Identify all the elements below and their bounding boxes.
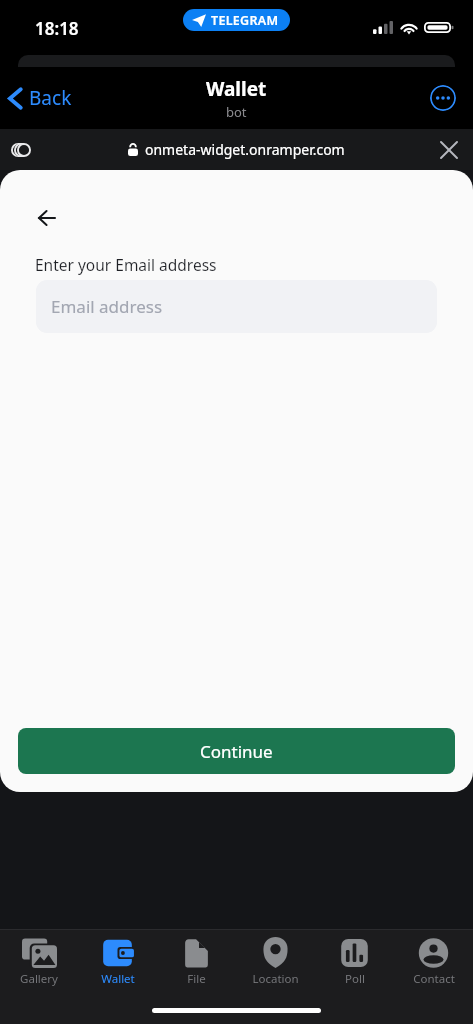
staticText: Back [29, 85, 72, 111]
button[interactable]: Poll [315, 930, 394, 995]
staticText: Location [252, 971, 299, 987]
staticText: Continue [200, 740, 273, 763]
staticText: Gallery [20, 971, 58, 987]
button[interactable]: Email address [36, 280, 437, 333]
button[interactable]: Back [0, 76, 80, 120]
staticText: Contact [413, 971, 455, 987]
staticText: Wallet [101, 971, 135, 987]
button[interactable]: Back [30, 203, 64, 233]
staticText: TELEGRAM [211, 12, 279, 29]
staticText: onmeta-widget.onramper.com [145, 140, 345, 159]
staticText: Enter your Email address [35, 254, 217, 275]
button[interactable]: Gallery [0, 930, 78, 995]
button[interactable]: More options [430, 85, 456, 111]
button[interactable]: Wallet [78, 930, 157, 995]
button[interactable]: Close [435, 136, 463, 164]
staticText: Email address [51, 295, 163, 318]
staticText: Wallet [206, 76, 267, 102]
staticText: bot [226, 103, 247, 121]
staticText: 18:18 [35, 17, 79, 40]
button[interactable]: Tabs [6, 135, 36, 165]
staticText: Poll [345, 971, 365, 987]
button[interactable]: Continue [18, 728, 455, 774]
staticText: File [187, 971, 206, 987]
button[interactable]: Location [236, 930, 315, 995]
button[interactable]: Contact [394, 930, 473, 995]
button[interactable]: File [157, 930, 236, 995]
